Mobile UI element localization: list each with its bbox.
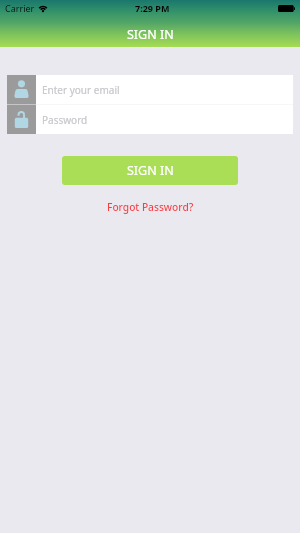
staticText: SIGN IN xyxy=(127,26,174,43)
staticText: Enter your email xyxy=(42,83,120,97)
button[interactable]: Password xyxy=(7,105,293,134)
staticText: Carrier xyxy=(5,2,35,14)
button[interactable]: Enter your email xyxy=(7,75,293,104)
staticText: Password xyxy=(42,113,88,127)
staticText: 7:29 PM xyxy=(135,2,170,14)
staticText: SIGN IN xyxy=(127,162,174,179)
staticText: Forgot Password? xyxy=(107,200,194,214)
button[interactable]: SIGN IN xyxy=(62,156,238,185)
button[interactable]: Forgot Password? xyxy=(103,199,198,215)
